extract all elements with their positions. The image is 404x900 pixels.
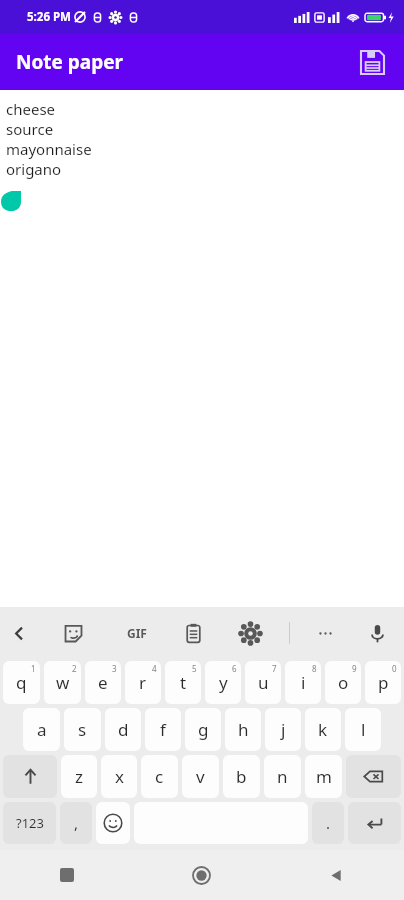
button[interactable]: ?123 <box>3 802 56 844</box>
staticText: mayonnaise <box>6 139 92 159</box>
staticText: 9 <box>352 663 357 674</box>
staticText: 5 <box>192 663 197 674</box>
button[interactable]: j <box>265 708 301 751</box>
staticText: 8 <box>312 663 317 674</box>
button[interactable]: x <box>101 755 137 798</box>
button[interactable]: More options <box>300 607 350 659</box>
button[interactable]: . <box>312 802 344 844</box>
staticText: l <box>361 718 366 741</box>
staticText: y <box>219 671 228 694</box>
staticText: e <box>98 671 108 694</box>
button[interactable]: k <box>305 708 341 751</box>
button[interactable]: s <box>64 708 101 751</box>
button[interactable]: f <box>145 708 181 751</box>
staticText: a <box>37 718 47 741</box>
button[interactable]: cheese <box>0 90 404 607</box>
staticText: x <box>115 765 124 788</box>
staticText: v <box>196 765 205 788</box>
button[interactable]: GIF <box>108 607 165 659</box>
staticText: t <box>180 671 187 694</box>
button[interactable]: Save <box>348 38 396 86</box>
staticText: c <box>155 765 164 788</box>
staticText: n <box>277 765 288 788</box>
button[interactable]: z <box>61 755 97 798</box>
button[interactable]: c <box>141 755 178 798</box>
staticText: 6 <box>232 663 237 674</box>
staticText: . <box>326 813 331 833</box>
button[interactable]: m <box>305 755 342 798</box>
staticText: Note paper <box>16 49 124 75</box>
button[interactable]: d <box>105 708 141 751</box>
button[interactable]: i <box>285 661 321 704</box>
staticText: b <box>236 765 247 788</box>
staticText: 4 <box>152 663 157 674</box>
staticText: f <box>160 718 166 741</box>
button[interactable]: t <box>165 661 201 704</box>
button[interactable]: a <box>23 708 60 751</box>
button[interactable]: w <box>44 661 81 704</box>
staticText: 7 <box>272 663 277 674</box>
button[interactable]: Recents <box>0 850 134 900</box>
staticText: 1 <box>31 663 36 674</box>
button[interactable]: o <box>325 661 361 704</box>
staticText: 3 <box>112 663 117 674</box>
staticText: r <box>139 671 147 694</box>
staticText: g <box>198 718 209 741</box>
button[interactable]: Home <box>134 850 269 900</box>
button[interactable]: b <box>223 755 260 798</box>
staticText: k <box>318 718 328 741</box>
staticText: GIF <box>127 625 147 641</box>
staticText: p <box>378 671 389 694</box>
staticText: source <box>6 119 54 139</box>
button[interactable]: l <box>345 708 381 751</box>
staticText: w <box>56 671 70 694</box>
button[interactable]: Clipboard <box>165 607 222 659</box>
button[interactable]: q <box>3 661 40 704</box>
staticText: s <box>78 718 87 741</box>
button[interactable]: Emoji <box>96 802 130 844</box>
button[interactable]: Voice input <box>350 607 404 659</box>
staticText: ?123 <box>16 814 44 832</box>
staticText: o <box>338 671 349 694</box>
button[interactable]: Back <box>269 850 404 900</box>
button[interactable]: Enter <box>348 802 401 844</box>
staticText: i <box>301 671 306 694</box>
staticText: origano <box>6 159 62 179</box>
button[interactable]: Back <box>0 607 38 659</box>
staticText: d <box>118 718 129 741</box>
button[interactable]: Backspace <box>346 755 401 798</box>
button[interactable]: Stickers <box>38 607 108 659</box>
button[interactable]: p <box>365 661 401 704</box>
staticText: 5:26 PM <box>27 9 71 25</box>
staticText: 0 <box>392 663 397 674</box>
button[interactable]: g <box>185 708 221 751</box>
button[interactable]: r <box>125 661 161 704</box>
staticText: h <box>238 718 249 741</box>
staticText: z <box>75 765 83 788</box>
staticText: u <box>258 671 269 694</box>
staticText: cheese <box>6 99 56 119</box>
button[interactable]: h <box>225 708 261 751</box>
button[interactable]: y <box>205 661 241 704</box>
button[interactable]: Shift <box>3 755 57 798</box>
staticText: m <box>316 765 332 788</box>
button[interactable]: n <box>264 755 301 798</box>
button[interactable]: Keyboard settings <box>222 607 279 659</box>
button[interactable]: v <box>182 755 219 798</box>
staticText: 2 <box>72 663 77 674</box>
button[interactable]: u <box>245 661 281 704</box>
button[interactable]: e <box>85 661 121 704</box>
staticText: , <box>74 813 79 833</box>
staticText: q <box>16 671 27 694</box>
button[interactable]: , <box>60 802 92 844</box>
staticText: j <box>281 718 286 741</box>
